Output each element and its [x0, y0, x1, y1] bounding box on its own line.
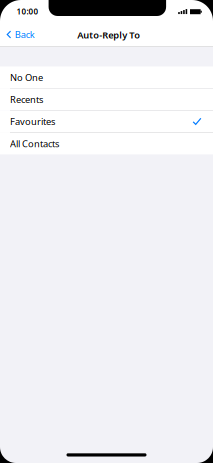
button[interactable]: Recents — [0, 89, 213, 111]
staticText: Auto-Reply To — [77, 29, 140, 41]
button[interactable]: No One — [0, 66, 213, 89]
staticText: Favourites — [10, 115, 55, 128]
button[interactable]: All Contacts — [0, 133, 213, 154]
staticText: 10:00 — [16, 6, 38, 17]
button[interactable]: Back — [0, 21, 35, 45]
staticText: All Contacts — [10, 137, 59, 150]
staticText: No One — [10, 71, 43, 83]
staticText: Recents — [10, 93, 43, 106]
staticText: Back — [15, 28, 35, 41]
button[interactable]: Favourites — [0, 111, 213, 133]
